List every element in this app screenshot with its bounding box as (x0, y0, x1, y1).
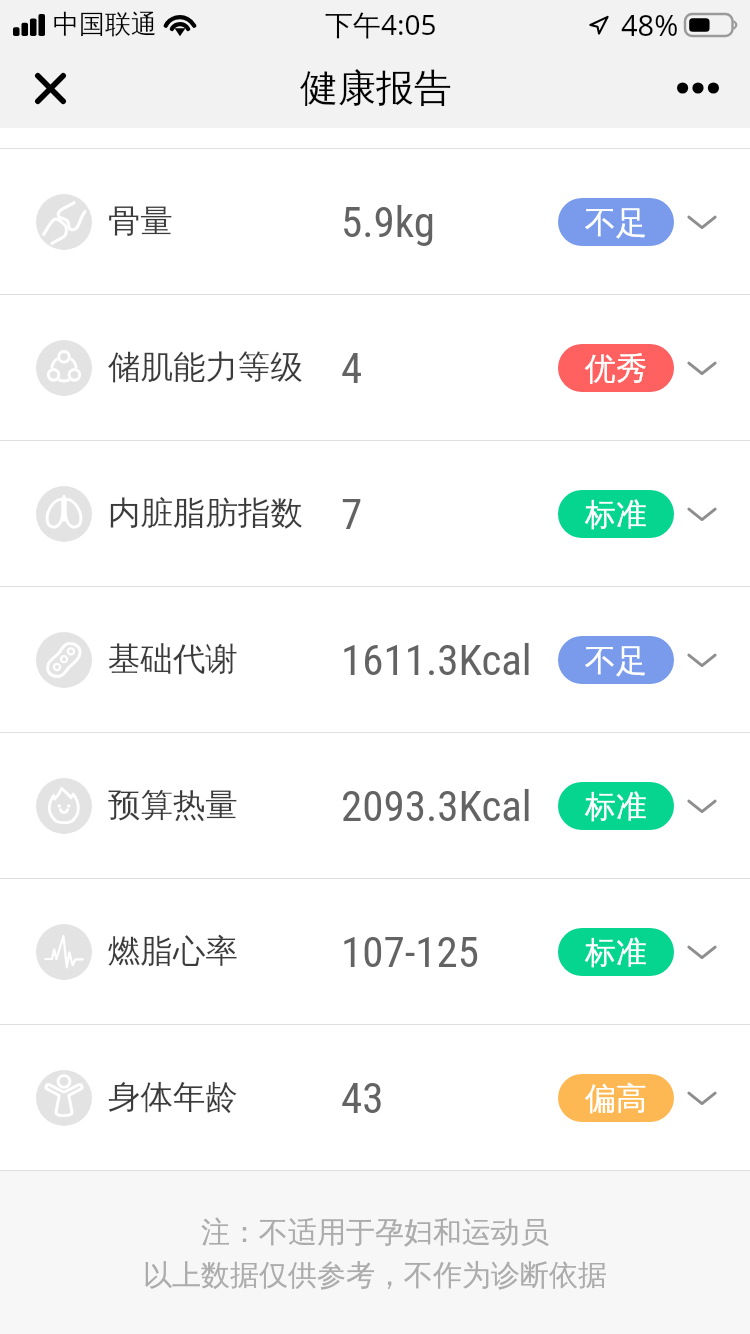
button[interactable]: More options (650, 48, 750, 128)
staticText: 储肌能力等级 (108, 347, 303, 388)
staticText: 标准 (585, 495, 647, 534)
staticText: 骨量 (108, 201, 173, 242)
staticText: 燃脂心率 (108, 931, 238, 972)
button[interactable]: 燃脂心率 (0, 879, 750, 1024)
staticText: 健康报告 (300, 64, 452, 112)
staticText: 基础代谢 (108, 639, 238, 680)
staticText: 2093.3Kcal (341, 781, 532, 831)
staticText: 7 (341, 489, 363, 539)
staticText: 107-125 (341, 927, 480, 977)
staticText: 中国联通 (53, 8, 157, 41)
button[interactable]: 内脏脂肪指数 (0, 441, 750, 586)
staticText: 不足 (585, 641, 647, 680)
staticText: 注：不适用于孕妇和运动员 (201, 1214, 549, 1251)
staticText: 优秀 (585, 349, 647, 388)
staticText: 身体年龄 (108, 1077, 238, 1118)
staticText: 下午4:05 (325, 5, 437, 43)
button[interactable]: Close (0, 48, 100, 128)
button[interactable]: 储肌能力等级 (0, 295, 750, 440)
staticText: 以上数据仅供参考，不作为诊断依据 (143, 1257, 607, 1294)
button[interactable]: 骨量 (0, 149, 750, 294)
staticText: 48% (621, 5, 679, 44)
staticText: 偏高 (585, 1079, 647, 1118)
button[interactable]: 基础代谢 (0, 587, 750, 732)
staticText: 43 (341, 1073, 384, 1123)
staticText: 不足 (585, 203, 647, 242)
button[interactable]: 身体年龄 (0, 1025, 750, 1170)
staticText: 1611.3Kcal (341, 635, 532, 685)
staticText: 4 (341, 343, 363, 393)
staticText: 标准 (585, 787, 647, 826)
staticText: 标准 (585, 933, 647, 972)
staticText: 内脏脂肪指数 (108, 493, 303, 534)
staticText: 预算热量 (108, 785, 238, 826)
staticText: 5.9kg (341, 197, 435, 247)
button[interactable]: 预算热量 (0, 733, 750, 878)
